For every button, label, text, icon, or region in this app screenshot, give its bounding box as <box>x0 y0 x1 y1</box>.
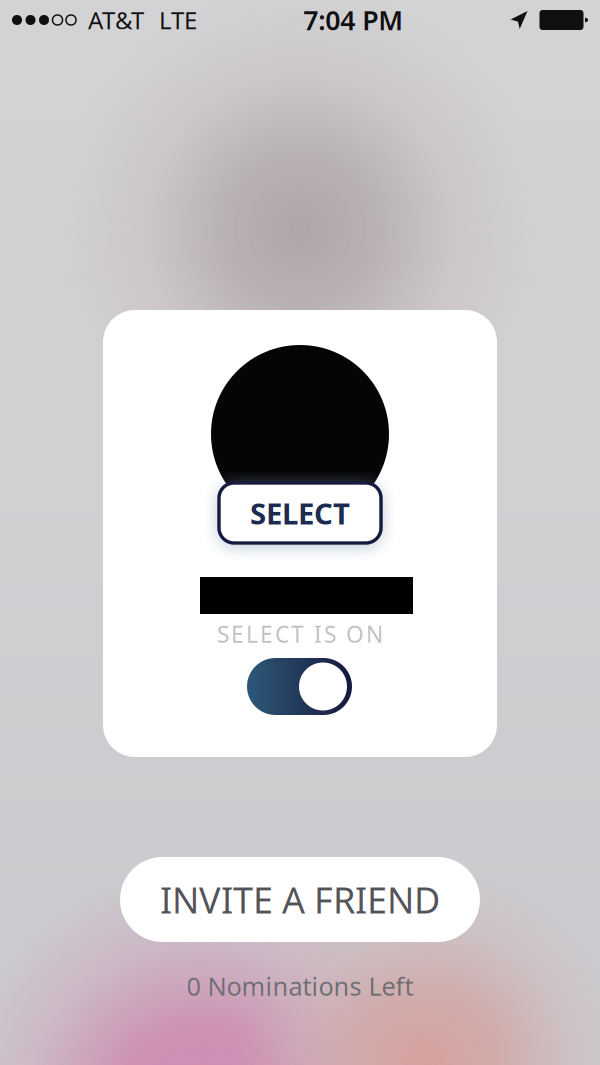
staticText: SELECT <box>250 493 350 532</box>
button[interactable]: SELECT <box>219 483 381 543</box>
staticText: AT&T <box>88 4 144 36</box>
button[interactable]: Select toggle <box>247 658 352 715</box>
staticText: LTE <box>159 4 197 36</box>
button[interactable]: INVITE A FRIEND <box>120 857 480 942</box>
staticText: S E L E C T I S O N <box>217 619 383 649</box>
staticText: 0 Nominations Left <box>186 969 413 1003</box>
staticText: INVITE A FRIEND <box>160 876 440 923</box>
staticText: 7:04 PM <box>303 2 403 38</box>
